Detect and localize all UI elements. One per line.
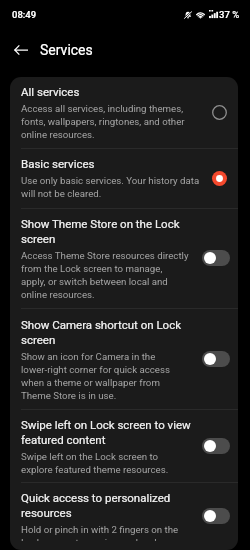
staticText: Swipe left on the Lock screen to explore… [21, 449, 169, 475]
staticText: Show Theme Store on the Lock screen [21, 216, 180, 246]
button[interactable]: Toggle [202, 351, 230, 367]
button[interactable]: Toggle [202, 250, 230, 266]
staticText: 08:49 [12, 9, 37, 20]
button[interactable]: Show Theme Store on the Lock screen [10, 209, 238, 308]
button[interactable]: Swipe left on Lock screen to view featur… [10, 410, 238, 482]
button[interactable]: Option [208, 101, 230, 123]
button[interactable]: All services [10, 77, 238, 148]
staticText: All services [21, 84, 80, 99]
button[interactable]: Selected option [208, 167, 230, 189]
staticText: Quick access to personalized resources [21, 490, 171, 520]
staticText: Show Camera shortcut on Lock screen [21, 317, 182, 347]
staticText: Access Theme Store resources directly fr… [21, 248, 189, 300]
button[interactable]: Quick access to personalized resources [10, 483, 238, 550]
staticText: Access all services, including themes, f… [21, 101, 185, 140]
button[interactable]: Toggle [202, 438, 230, 454]
button[interactable]: Toggle [202, 508, 230, 524]
button[interactable]: Back [2, 31, 40, 69]
button[interactable]: Show Camera shortcut on Lock screen [10, 309, 238, 409]
staticText: Use only basic services. Your history da… [21, 173, 200, 199]
staticText: Show an icon for Camera in the lower-rig… [21, 349, 171, 401]
staticText: Swipe left on Lock screen to view featur… [21, 417, 191, 447]
staticText: Basic services [21, 156, 95, 171]
staticText: Services [40, 42, 93, 58]
button[interactable]: Basic services [10, 149, 238, 208]
staticText: Hold or pinch in with 2 fingers on the L… [21, 522, 179, 541]
staticText: 37 % [219, 9, 240, 20]
